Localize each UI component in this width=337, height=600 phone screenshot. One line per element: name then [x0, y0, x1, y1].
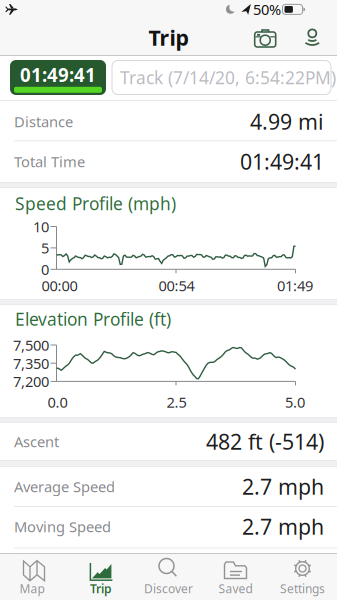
- staticText: 50%: [253, 0, 281, 19]
- staticText: 5.0: [285, 392, 305, 412]
- staticText: Trip: [90, 580, 112, 596]
- staticText: Distance: [14, 112, 73, 131]
- staticText: Trip: [148, 23, 188, 52]
- staticText: 4.99 mi: [250, 107, 324, 136]
- staticText: 7,500: [13, 335, 49, 355]
- staticText: Average Speed: [14, 477, 115, 496]
- staticText: Settings: [280, 580, 325, 596]
- staticText: 2.5: [166, 392, 186, 412]
- staticText: Map: [19, 580, 44, 596]
- staticText: Total Time: [14, 152, 85, 171]
- staticText: 7,200: [13, 372, 49, 391]
- staticText: 7,350: [13, 353, 49, 373]
- staticText: 00:54: [158, 276, 194, 295]
- staticText: 10: [33, 217, 49, 236]
- staticText: 00:00: [41, 276, 77, 295]
- staticText: 01:49:41: [20, 62, 96, 87]
- staticText: Discover: [144, 580, 193, 596]
- staticText: Moving Speed: [14, 517, 111, 536]
- staticText: 0.0: [47, 392, 67, 412]
- staticText: 01:49:41: [240, 147, 324, 176]
- staticText: Track (7/14/20, 6:54:22PM): [120, 66, 336, 89]
- staticText: Speed Profile (mph): [15, 192, 176, 215]
- staticText: Ascent: [14, 432, 59, 451]
- staticText: 2.7 mph: [242, 472, 324, 501]
- staticText: 5: [41, 238, 49, 258]
- staticText: Saved: [218, 580, 252, 596]
- staticText: 01:49: [277, 276, 313, 295]
- staticText: 2.7 mph: [242, 512, 324, 541]
- staticText: Elevation Profile (ft): [15, 307, 171, 330]
- staticText: 0: [41, 260, 49, 279]
- staticText: 482 ft (-514): [206, 427, 324, 456]
